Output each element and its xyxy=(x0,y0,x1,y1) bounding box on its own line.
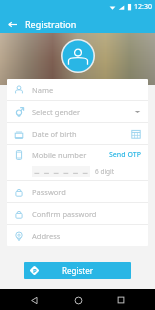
button[interactable]: P xyxy=(24,262,131,279)
button[interactable]: Name xyxy=(7,79,148,100)
staticText: Register xyxy=(40,265,115,276)
button[interactable]: Profile photo xyxy=(61,39,95,73)
button[interactable]: Send OTP xyxy=(109,150,141,160)
button[interactable]: Back xyxy=(24,290,44,310)
button[interactable]: Pick date xyxy=(131,129,141,139)
button[interactable]: Select gender xyxy=(7,101,148,122)
staticText: Select gender xyxy=(32,107,134,117)
staticText: Mobile number xyxy=(32,150,109,160)
button[interactable]: Back xyxy=(4,16,20,32)
staticText: Registration xyxy=(25,18,77,30)
button[interactable]: Recents xyxy=(111,290,131,310)
button[interactable]: Date of birth xyxy=(7,123,148,144)
button[interactable]: Confirm password xyxy=(7,203,148,224)
staticText: Name xyxy=(32,85,141,95)
staticText: Confirm password xyxy=(32,209,141,219)
button[interactable]: Address xyxy=(7,225,148,246)
staticText: Date of birth xyxy=(32,129,131,139)
staticText: Password xyxy=(32,187,141,197)
staticText: 6 digit xyxy=(95,167,115,176)
button[interactable]: Password xyxy=(7,181,148,202)
staticText: 12:30 xyxy=(134,2,152,12)
staticText: P xyxy=(33,267,37,275)
staticText: Send OTP xyxy=(109,150,141,160)
staticText: Address xyxy=(32,231,141,241)
button[interactable]: Mobile number xyxy=(7,145,148,180)
button[interactable]: Home xyxy=(68,290,88,310)
